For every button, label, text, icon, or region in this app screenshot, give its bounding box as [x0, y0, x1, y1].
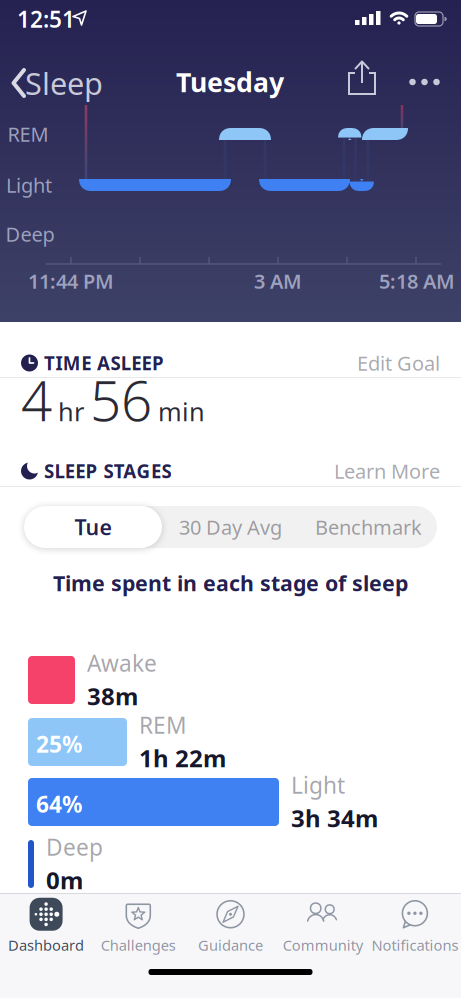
staticText: Challenges [101, 935, 176, 955]
staticText: Guidance [198, 935, 263, 955]
button[interactable]: Edit Goal [357, 350, 440, 376]
staticText: Awake [87, 648, 157, 678]
staticText: 1h 22m [139, 742, 226, 774]
button[interactable]: Notifications [369, 893, 461, 959]
button[interactable]: Share [340, 59, 384, 103]
button[interactable]: Benchmark [299, 506, 437, 548]
staticText: 3 AM [254, 268, 302, 294]
staticText: hr [58, 395, 84, 428]
button[interactable]: Dashboard [0, 893, 92, 959]
button[interactable]: More [402, 60, 446, 104]
staticText: Light [6, 172, 52, 198]
staticText: REM [139, 710, 187, 740]
staticText: Tue [74, 513, 111, 541]
staticText: 25% [36, 729, 82, 759]
staticText: Deep [46, 832, 103, 862]
staticText: 56 [90, 364, 152, 436]
staticText: 11:44 PM [28, 268, 114, 294]
staticText: Dashboard [8, 935, 84, 955]
staticText: Tuesday [176, 64, 284, 100]
staticText: 30 Day Avg [179, 514, 282, 540]
staticText: min [158, 395, 205, 428]
staticText: 64% [36, 789, 82, 819]
staticText: SLEEP STAGES [44, 459, 171, 483]
staticText: Community [283, 935, 363, 955]
staticText: Light [291, 770, 345, 800]
staticText: Edit Goal [357, 350, 440, 376]
staticText: Deep [5, 221, 54, 247]
staticText: Benchmark [315, 514, 422, 540]
staticText: Time spent in each stage of sleep [53, 569, 408, 597]
button[interactable]: Sleep [0, 56, 100, 110]
staticText: TIME ASLEEP [44, 351, 164, 375]
button[interactable]: Challenges [92, 893, 184, 959]
button[interactable]: 30 Day Avg [161, 506, 299, 548]
button[interactable]: Guidance [184, 893, 277, 959]
staticText: 12:51 [17, 4, 75, 34]
staticText: Sleep [25, 63, 103, 103]
staticText: Notifications [371, 935, 458, 955]
staticText: 3h 34m [291, 802, 378, 834]
staticText: REM [7, 121, 48, 147]
staticText: 4 [21, 364, 52, 436]
staticText: 0m [46, 864, 83, 896]
staticText: Learn More [334, 458, 440, 484]
staticText: 5:18 AM [379, 268, 455, 294]
button[interactable]: Learn More [334, 458, 440, 484]
button[interactable]: Tue [24, 506, 162, 548]
staticText: 38m [87, 680, 138, 712]
button[interactable]: Community [277, 893, 369, 959]
